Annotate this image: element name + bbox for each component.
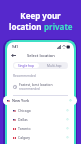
staticText: New York: [12, 98, 30, 103]
button[interactable]: Multi-hop: [40, 62, 68, 69]
staticText: Toronto: [18, 126, 31, 131]
staticText: Multi-hop: [47, 64, 62, 68]
staticText: Recommended: [13, 74, 36, 78]
staticText: recommended: [19, 87, 40, 91]
button[interactable]: Toronto: [13, 124, 69, 133]
staticText: 9:41: [12, 45, 18, 49]
staticText: location: [9, 21, 44, 32]
staticText: private: [44, 21, 73, 32]
button[interactable]: Dallas: [13, 115, 69, 124]
staticText: Single hop: [18, 64, 35, 68]
button[interactable]: Fastest, best location: [13, 82, 69, 91]
staticText: Fastest, best location: [19, 82, 53, 87]
button[interactable]: Single hop: [14, 63, 39, 68]
button[interactable]: Calgary: [13, 133, 69, 142]
button[interactable]: Chicago: [13, 106, 69, 115]
staticText: Select location: [27, 53, 55, 58]
button[interactable]: New York: [3, 96, 77, 105]
staticText: Keep your: [20, 10, 61, 21]
staticText: Chicago: [18, 108, 31, 113]
staticText: Calgary: [18, 135, 31, 140]
button[interactable]: Back: [9, 51, 18, 60]
staticText: Dallas: [18, 117, 28, 122]
